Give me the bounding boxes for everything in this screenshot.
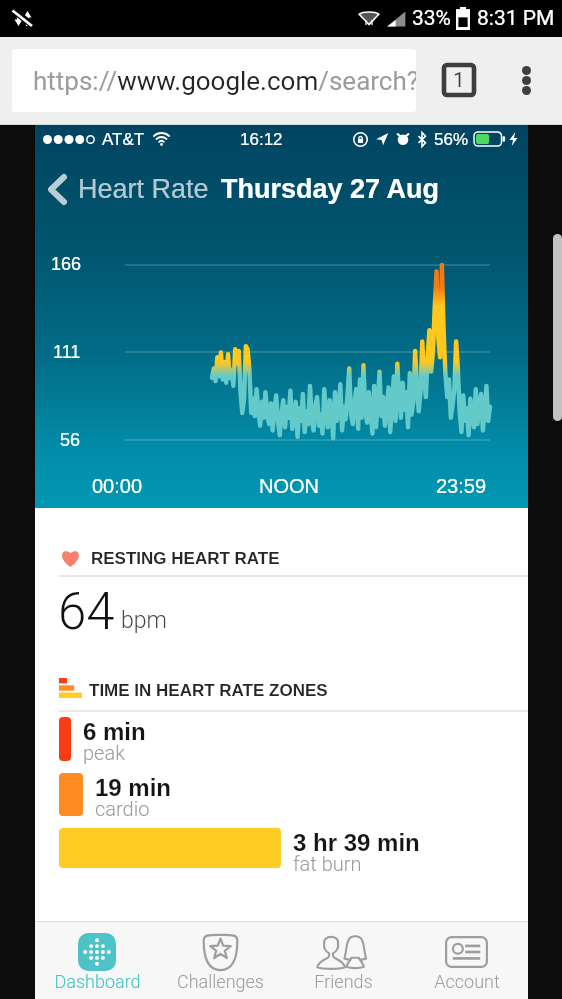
- staticText: 1: [453, 68, 465, 93]
- staticText: cardio: [95, 797, 150, 820]
- staticText: RESTING HEART RATE: [91, 549, 280, 568]
- staticText: Account: [434, 971, 500, 992]
- staticText: 56: [60, 430, 81, 450]
- button[interactable]: https://www.google.com/search?: [12, 49, 416, 112]
- staticText: 16:12: [240, 130, 283, 149]
- staticText: Heart Rate: [78, 174, 209, 204]
- staticText: AT&T: [102, 130, 145, 149]
- staticText: fat burn: [293, 852, 362, 875]
- staticText: 6 min: [83, 718, 146, 745]
- staticText: 19 min: [95, 774, 172, 801]
- staticText: 3 hr 39 min: [293, 829, 420, 856]
- button[interactable]: Challenges: [159, 922, 282, 999]
- staticText: Thursday 27 Aug: [221, 174, 440, 204]
- staticText: 00:00: [92, 475, 143, 497]
- button[interactable]: Account: [405, 922, 528, 999]
- staticText: 166: [51, 254, 82, 274]
- staticText: NOON: [259, 475, 319, 497]
- staticText: 111: [53, 342, 81, 362]
- staticText: 8:31 PM: [477, 6, 555, 31]
- staticText: Challenges: [177, 971, 264, 992]
- staticText: Friends: [314, 971, 373, 992]
- button[interactable]: More options: [503, 57, 549, 103]
- staticText: peak: [83, 741, 125, 764]
- staticText: 64: [58, 582, 115, 642]
- staticText: 33%: [412, 6, 451, 31]
- staticText: bpm: [121, 607, 167, 634]
- staticText: 56%: [434, 130, 469, 149]
- button[interactable]: 19 min: [59, 773, 528, 823]
- staticText: Dashboard: [54, 971, 141, 992]
- button[interactable]: Back: [39, 171, 75, 207]
- button[interactable]: 6 min: [59, 717, 528, 767]
- button[interactable]: 3 hr 39 min: [59, 828, 528, 878]
- button[interactable]: Friends: [282, 922, 405, 999]
- staticText: https://www.google.com/search?: [33, 66, 416, 96]
- button[interactable]: Dashboard: [35, 922, 159, 999]
- button[interactable]: Tabs: [436, 57, 482, 103]
- staticText: 23:59: [436, 475, 487, 497]
- staticText: TIME IN HEART RATE ZONES: [89, 681, 328, 700]
